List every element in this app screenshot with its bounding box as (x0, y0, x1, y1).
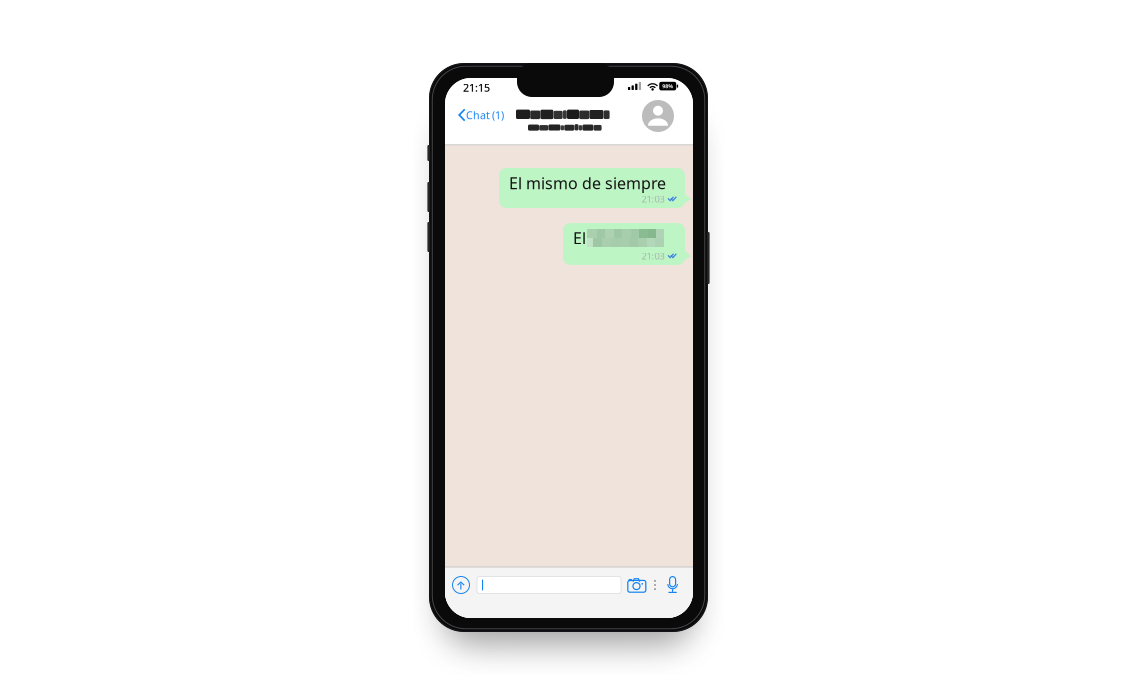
staticText: 21:03 (641, 250, 664, 262)
staticText: El (573, 227, 586, 249)
button[interactable]: Voice message (445, 78, 458, 96)
staticText: 98% (662, 83, 673, 90)
button[interactable]: Message field (445, 78, 589, 95)
button[interactable]: Chat (445, 78, 501, 98)
staticText: 21:03 (641, 193, 664, 205)
staticText: Chat (466, 108, 490, 122)
staticText: (1) (492, 108, 504, 122)
staticText: 21:15 (463, 80, 490, 95)
button[interactable]: Attach (445, 78, 463, 96)
button[interactable]: Camera (445, 78, 465, 94)
staticText: El mismo de siempre (509, 172, 666, 194)
button[interactable]: Contact profile (445, 78, 477, 110)
